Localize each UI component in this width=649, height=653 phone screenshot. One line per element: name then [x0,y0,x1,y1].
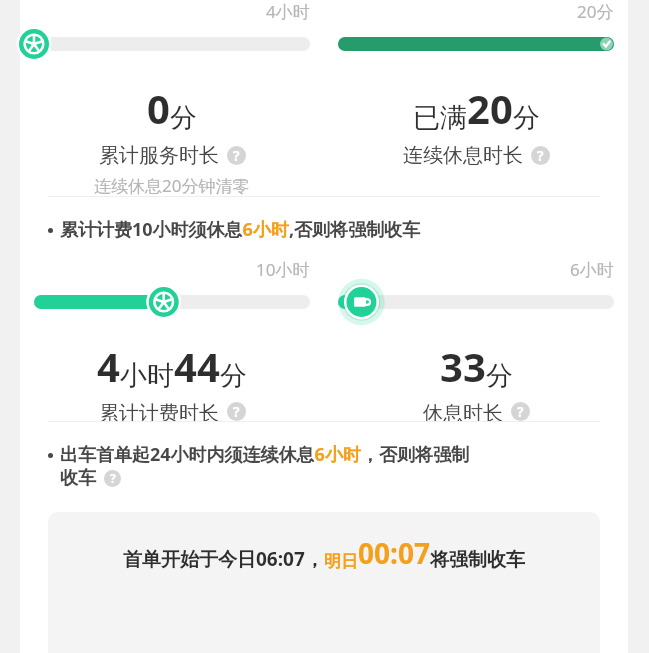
staticText: 33 [440,339,486,393]
staticText: 累计计费时长 [99,401,219,421]
staticText: ? [233,146,240,165]
staticText: 00:07 [358,534,430,572]
staticText: 4小时 [266,0,310,23]
staticText: 累计服务时长 [99,143,219,168]
button[interactable]: 帮助说明 [511,402,530,421]
staticText: 20分 [577,0,614,23]
staticText: 10小时 [256,258,310,281]
staticText: 分 [170,101,197,135]
staticText: 分 [220,359,247,393]
staticText: 已满 [413,101,467,135]
staticText: 明日 [324,551,358,572]
staticText: 分 [486,359,513,393]
button[interactable]: 帮助说明 [227,146,246,165]
staticText: 累计计费10小时须休息6小时,否则将强制收车 [60,217,421,242]
staticText: 休息时长 [423,401,503,421]
staticText: 20 [467,81,513,135]
staticText: 4 [97,339,120,393]
staticText: 首单开始于今日06:07， [123,546,324,572]
button[interactable]: 出车首单起24小时内须连续休息6小时，否则将强制 [48,442,604,490]
staticText: 出车首单起24小时内须连续休息6小时，否则将强制 [60,442,469,467]
staticText: 将强制收车 [430,548,525,572]
staticText: 收车 [60,467,96,490]
button[interactable]: 4小时 [20,0,324,196]
button[interactable]: 累计计费10小时须休息6小时,否则将强制收车 [48,217,604,242]
staticText: ? [537,146,544,165]
button[interactable]: 帮助说明 [531,146,550,165]
button[interactable]: 帮助说明 [104,470,121,487]
button[interactable]: 首单开始于今日06:07， [48,512,600,653]
staticText: 连续休息时长 [403,143,523,168]
staticText: 0 [147,81,170,135]
button[interactable]: 20分 [324,0,628,168]
staticText: 分 [513,101,540,135]
staticText: 小时 [120,359,174,393]
staticText: 6小时 [570,258,614,281]
staticText: ? [233,402,240,421]
button[interactable]: 6小时 [324,258,628,421]
staticText: ? [517,402,524,421]
button[interactable]: 10小时 [20,258,324,421]
staticText: 44 [174,339,220,393]
staticText: 连续休息20分钟清零 [94,174,250,196]
staticText: ? [110,470,116,487]
button[interactable]: 帮助说明 [227,402,246,421]
